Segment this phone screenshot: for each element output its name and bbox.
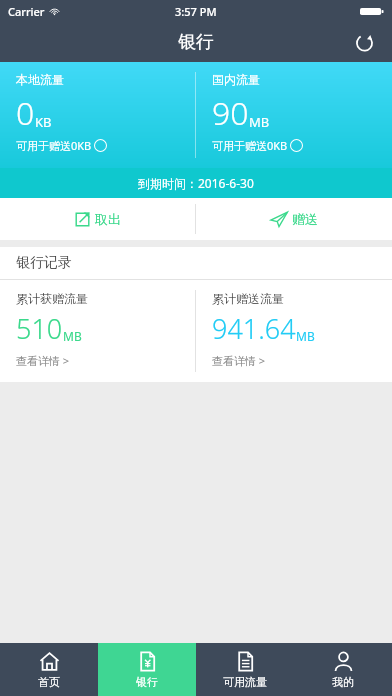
staticText: 可用于赠送0KB <box>16 138 92 153</box>
button[interactable]: 可用流量 <box>196 643 294 696</box>
staticText: 0 <box>16 91 35 135</box>
staticText: MB <box>63 328 82 344</box>
button[interactable]: Refresh <box>344 22 384 62</box>
staticText: 取出 <box>95 211 121 227</box>
button[interactable]: 银行 <box>98 643 196 696</box>
button[interactable]: 取出 <box>0 198 195 240</box>
button[interactable]: 首页 <box>0 643 98 696</box>
staticText: 可用于赠送0KB <box>212 138 288 153</box>
staticText: 银行 <box>136 675 158 689</box>
staticText: 累计获赠流量 <box>16 291 88 306</box>
button[interactable]: 可用于赠送0KB <box>16 138 107 153</box>
staticText: 我的 <box>332 675 354 689</box>
button[interactable]: 赠送 <box>196 198 392 240</box>
staticText: 到期时间：2016-6-30 <box>138 175 254 191</box>
staticText: MB <box>249 113 270 131</box>
staticText: 银行 <box>178 31 214 54</box>
button[interactable]: 查看详情 > <box>16 353 70 368</box>
staticText: 本地流量 <box>16 72 64 87</box>
staticText: 510 <box>16 310 63 347</box>
staticText: Carrier <box>8 4 45 19</box>
button[interactable]: 可用于赠送0KB <box>212 138 303 153</box>
staticText: 国内流量 <box>212 72 260 87</box>
staticText: 90 <box>212 91 249 135</box>
staticText: 查看详情 > <box>16 353 70 368</box>
button[interactable]: 查看详情 > <box>212 353 266 368</box>
staticText: 3:57 PM <box>175 4 217 19</box>
staticText: 赠送 <box>292 211 318 227</box>
staticText: 查看详情 > <box>212 353 266 368</box>
staticText: 累计赠送流量 <box>212 291 284 306</box>
staticText: KB <box>35 113 52 131</box>
staticText: 首页 <box>38 675 60 689</box>
staticText: MB <box>296 328 315 344</box>
staticText: 可用流量 <box>223 675 267 689</box>
button[interactable]: 我的 <box>294 643 392 696</box>
staticText: 941.64 <box>212 310 296 347</box>
staticText: 银行记录 <box>16 254 72 272</box>
